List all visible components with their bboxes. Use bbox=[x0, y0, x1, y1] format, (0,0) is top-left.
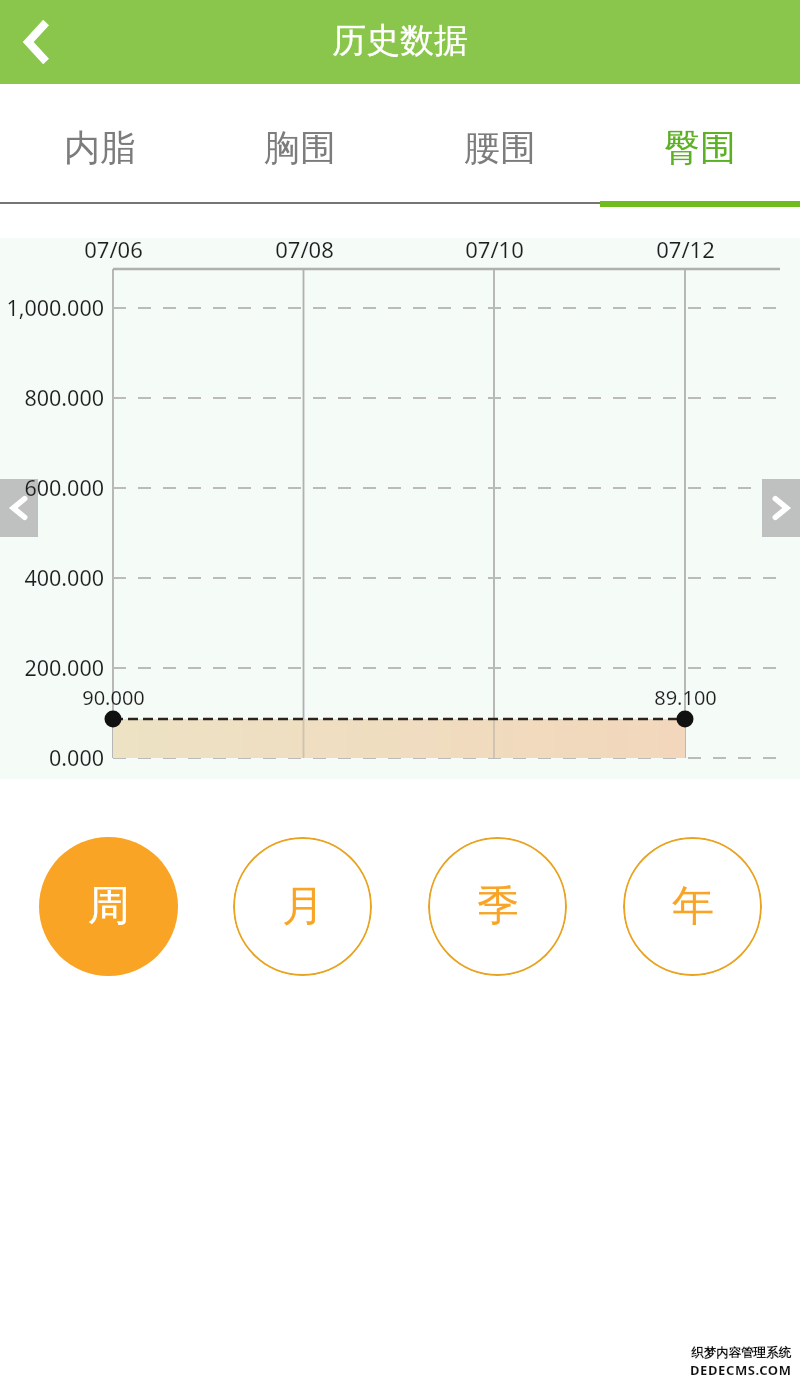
button[interactable]: Next range bbox=[762, 479, 800, 537]
staticText: 400.000 bbox=[24, 563, 104, 592]
staticText: 1,000.000 bbox=[6, 293, 104, 322]
button[interactable]: 臀围 bbox=[600, 88, 800, 206]
staticText: DEDECMS.COM bbox=[690, 1361, 792, 1379]
button[interactable]: 内脂 bbox=[0, 88, 200, 206]
button[interactable]: 周 bbox=[39, 837, 178, 976]
staticText: 07/08 bbox=[275, 234, 334, 264]
button[interactable]: 年 bbox=[623, 837, 762, 976]
staticText: 07/12 bbox=[656, 234, 715, 264]
button[interactable]: 胸围 bbox=[200, 88, 400, 206]
staticText: 07/10 bbox=[465, 234, 524, 264]
button[interactable]: Back bbox=[0, 0, 80, 84]
staticText: 200.000 bbox=[24, 653, 104, 682]
staticText: 内脂 bbox=[64, 125, 136, 170]
staticText: 腰围 bbox=[464, 125, 536, 170]
staticText: 600.000 bbox=[24, 473, 104, 502]
staticText: 臀围 bbox=[664, 125, 736, 170]
staticText: 年 bbox=[672, 880, 714, 933]
staticText: 0.000 bbox=[49, 743, 104, 772]
button[interactable]: 季 bbox=[428, 837, 567, 976]
staticText: 90.000 bbox=[82, 684, 145, 711]
button[interactable]: 月 bbox=[233, 837, 372, 976]
button[interactable]: 腰围 bbox=[400, 88, 600, 206]
staticText: 历史数据 bbox=[332, 19, 468, 62]
staticText: 胸围 bbox=[264, 125, 336, 170]
button[interactable]: Previous range bbox=[0, 479, 38, 537]
staticText: 89.100 bbox=[654, 684, 717, 711]
staticText: 季 bbox=[477, 880, 519, 933]
staticText: 织梦内容管理系统 bbox=[691, 1345, 791, 1361]
staticText: 月 bbox=[282, 880, 324, 933]
staticText: 800.000 bbox=[24, 383, 104, 412]
staticText: 周 bbox=[88, 880, 130, 933]
staticText: 07/06 bbox=[84, 234, 143, 264]
